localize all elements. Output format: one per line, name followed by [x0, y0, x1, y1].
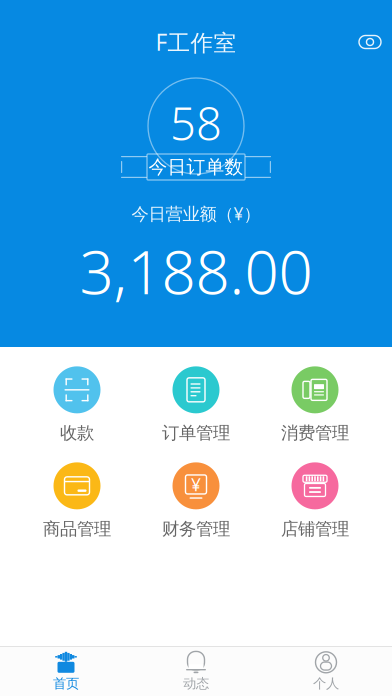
staticText: 订单管理 [162, 422, 230, 444]
staticText: 今日订单数 [148, 155, 243, 178]
button[interactable]: 订单管理 [141, 364, 251, 446]
staticText: 个人 [313, 675, 339, 692]
staticText: 今日营业额（¥） [131, 202, 260, 225]
staticText: 商品管理 [43, 518, 111, 540]
staticText: 消费管理 [281, 422, 349, 444]
staticText: 店铺管理 [281, 518, 349, 540]
staticText: 3,188.00 [79, 231, 312, 311]
button[interactable]: 店铺管理 [260, 460, 370, 542]
button[interactable]: 动态 [131, 648, 261, 695]
staticText: ¥ [191, 473, 201, 496]
button[interactable]: Toggle visibility [348, 20, 392, 64]
staticText: 首页 [53, 675, 79, 692]
staticText: 动态 [183, 675, 209, 692]
staticText: 58 [170, 93, 222, 153]
staticText: F工作室 [155, 27, 236, 57]
button[interactable]: 收款 [22, 364, 132, 446]
staticText: 财务管理 [162, 518, 230, 540]
button[interactable]: ¥ [141, 460, 251, 542]
button[interactable]: 首页 [1, 648, 131, 695]
button[interactable]: 个人 [261, 648, 391, 695]
staticText: 收款 [60, 422, 94, 444]
button[interactable]: 商品管理 [22, 460, 132, 542]
button[interactable]: 消费管理 [260, 364, 370, 446]
